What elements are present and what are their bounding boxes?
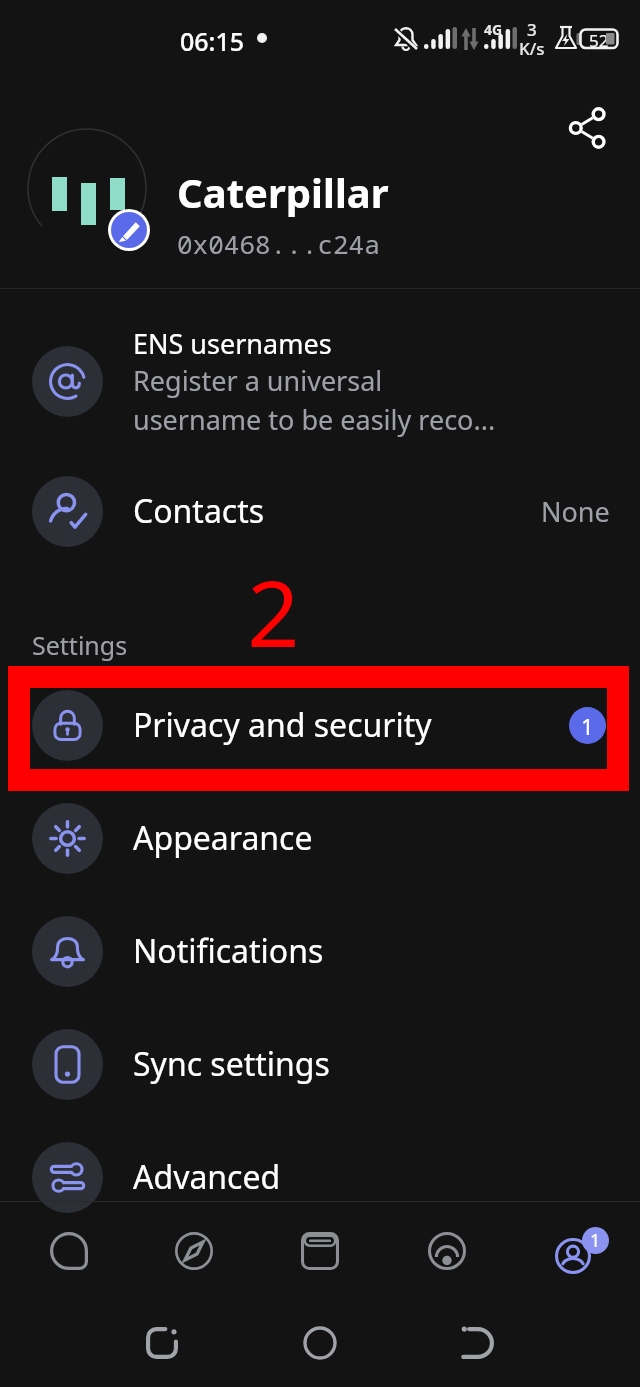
staticText: 52 bbox=[589, 29, 609, 52]
button[interactable]: Sync settings bbox=[0, 1014, 640, 1114]
staticText: 06:15 bbox=[180, 24, 245, 58]
staticText: Caterpillar bbox=[177, 165, 389, 219]
staticText: Privacy and security bbox=[133, 703, 432, 747]
button[interactable]: Wallet bbox=[272, 1203, 368, 1299]
staticText: 1 bbox=[590, 1228, 601, 1253]
button[interactable]: Share bbox=[558, 98, 618, 158]
button[interactable]: Advanced bbox=[0, 1127, 640, 1227]
staticText: ENS usernames bbox=[133, 325, 332, 362]
button[interactable]: Contacts bbox=[0, 461, 640, 561]
staticText: Settings bbox=[32, 628, 128, 662]
button[interactable]: Edit profile bbox=[111, 212, 147, 248]
staticText: Contacts bbox=[133, 489, 265, 533]
button[interactable]: Explore bbox=[146, 1203, 242, 1299]
button[interactable]: Home bbox=[292, 1315, 348, 1371]
staticText: 3 bbox=[527, 18, 537, 41]
staticText: Appearance bbox=[133, 816, 313, 860]
staticText: 2 bbox=[247, 549, 300, 674]
staticText: Sync settings bbox=[133, 1042, 330, 1086]
button[interactable]: Home bbox=[21, 1203, 117, 1299]
button[interactable]: ENS usernames bbox=[0, 306, 640, 456]
staticText: 0x0468...c24a bbox=[177, 226, 380, 261]
button[interactable]: Appearance bbox=[0, 788, 640, 888]
button[interactable]: Privacy and security bbox=[0, 675, 640, 775]
button[interactable]: Back bbox=[450, 1315, 506, 1371]
staticText: None bbox=[541, 493, 610, 530]
staticText: Advanced bbox=[133, 1155, 281, 1199]
staticText: 4G bbox=[484, 20, 503, 39]
button[interactable]: Profile bbox=[524, 1203, 620, 1299]
button[interactable]: Discover bbox=[399, 1203, 495, 1299]
staticText: 1 bbox=[581, 711, 594, 741]
staticText: Notifications bbox=[133, 929, 324, 973]
staticText: Register a universal username to be easi… bbox=[133, 362, 496, 438]
button[interactable]: Recents bbox=[134, 1315, 190, 1371]
staticText: K/s bbox=[519, 37, 545, 60]
button[interactable]: Notifications bbox=[0, 901, 640, 1001]
